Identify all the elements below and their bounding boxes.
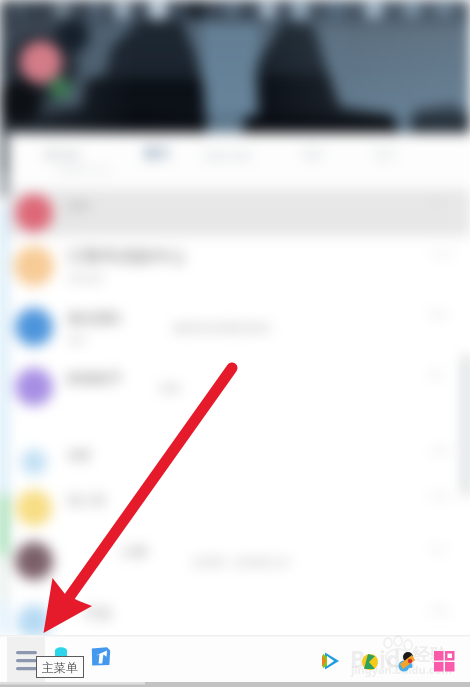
staticText: jingyan.baidu.com [351,662,453,677]
button[interactable]: 主菜单 Main menu [7,637,45,682]
staticText: 经验 [412,644,448,667]
button[interactable]: Upload tool [91,646,111,666]
staticText: 订阅号消息中心 [67,246,186,267]
staticText: 主菜单 [42,660,78,675]
staticText: 小李 [120,544,148,562]
staticText: 购物助手 [67,370,123,388]
staticText: Baidu [350,643,416,674]
staticText: 微信团队 [67,310,123,328]
staticText: 聊天 [144,145,170,161]
staticText: 威廉 [67,447,91,462]
staticText: 开发 [84,605,112,623]
